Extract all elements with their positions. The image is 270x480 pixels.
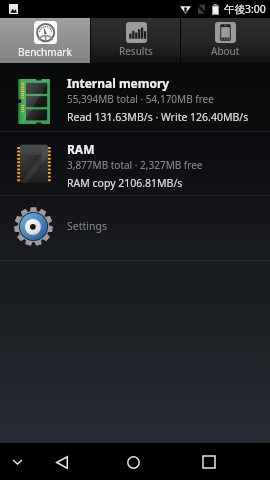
button[interactable]: Benchmark	[0, 18, 90, 63]
staticText: 3,877MB total · 2,327MB free	[67, 158, 203, 172]
staticText: Internal memory	[67, 75, 170, 91]
staticText: Settings	[67, 219, 107, 233]
staticText: 午後3:00	[224, 2, 266, 16]
staticText: About	[211, 44, 240, 58]
staticText: RAM copy 2106.81MB/s	[67, 176, 183, 190]
button[interactable]: Recent apps	[192, 445, 226, 479]
button[interactable]: Home	[116, 445, 150, 479]
staticText: RAM	[67, 141, 95, 157]
button[interactable]: Back	[45, 445, 79, 479]
button[interactable]: Settings	[0, 196, 270, 260]
button[interactable]: About	[181, 18, 270, 63]
staticText: Benchmark	[18, 45, 72, 59]
staticText: Read 131.63MB/s · Write 126.40MB/s	[67, 110, 249, 124]
button[interactable]: Internal memory	[0, 63, 270, 131]
button[interactable]: Hide keyboard	[0, 445, 34, 479]
staticText: 55,394MB total · 54,170MB free	[67, 92, 214, 106]
staticText: Results	[119, 44, 153, 58]
button[interactable]: RAM	[0, 132, 270, 195]
button[interactable]: Results	[91, 18, 180, 63]
